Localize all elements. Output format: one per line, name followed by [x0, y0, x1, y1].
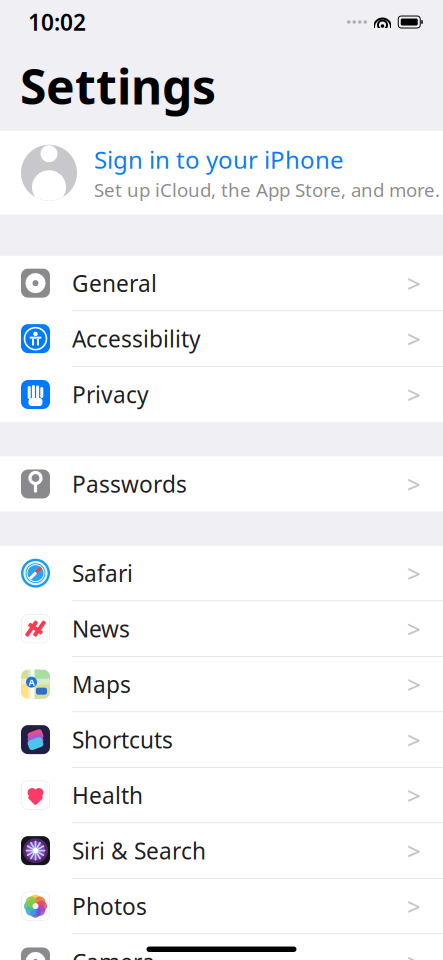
staticText: Sign in to your iPhone [94, 143, 344, 175]
button[interactable]: A [0, 657, 443, 712]
staticText: Set up iCloud, the App Store, and more. [94, 177, 440, 202]
button[interactable]: Health [0, 768, 443, 823]
button[interactable]: Photos [0, 879, 443, 934]
staticText: > [407, 946, 421, 960]
button[interactable]: General [0, 256, 443, 311]
button[interactable]: News [0, 601, 443, 657]
staticText: News [72, 614, 130, 644]
staticText: Siri & Search [72, 836, 206, 866]
staticText: Accessibility [72, 324, 201, 354]
button[interactable]: Siri & Search [0, 823, 443, 879]
staticText: > [407, 779, 421, 811]
button[interactable]: Shortcuts [0, 712, 443, 768]
staticText: Maps [72, 669, 131, 699]
staticText: Health [72, 780, 143, 810]
staticText: > [407, 890, 421, 922]
staticText: General [72, 268, 157, 298]
button[interactable]: Sign in to your iPhone [0, 131, 443, 215]
staticText: Photos [72, 891, 147, 921]
staticText: 10:02 [28, 7, 86, 37]
staticText: Camera [72, 947, 155, 960]
staticText: Shortcuts [72, 725, 173, 755]
button[interactable]: Safari [0, 546, 443, 601]
staticText: > [407, 668, 421, 700]
staticText: Passwords [72, 469, 187, 499]
button[interactable]: Privacy [0, 367, 443, 422]
staticText: > [407, 468, 421, 500]
staticText: > [407, 724, 421, 756]
button[interactable]: Accessibility [0, 311, 443, 367]
staticText: A [28, 676, 34, 688]
staticText: > [407, 267, 421, 299]
staticText: Safari [72, 558, 133, 588]
staticText: Settings [20, 54, 216, 118]
staticText: > [407, 323, 421, 355]
button[interactable]: Camera [0, 934, 443, 960]
button[interactable]: Passwords [0, 456, 443, 512]
staticText: > [407, 835, 421, 867]
staticText: > [407, 379, 421, 410]
staticText: > [407, 613, 421, 645]
staticText: > [407, 557, 421, 589]
staticText: Privacy [72, 379, 149, 409]
